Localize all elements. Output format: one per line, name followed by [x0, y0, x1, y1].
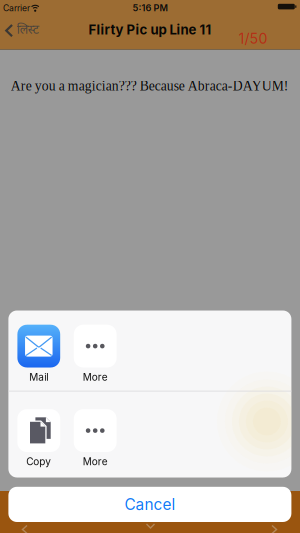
button[interactable]: Copy	[17, 409, 60, 468]
button[interactable]: Back	[5, 22, 39, 39]
staticText: Flirty Pic up Line 11	[88, 22, 211, 38]
staticText: More	[83, 456, 108, 468]
staticText: 5:16 PM	[132, 2, 167, 13]
staticText: लिस्ट	[17, 22, 39, 39]
staticText: Copy	[26, 456, 51, 468]
staticText: Carrier	[3, 3, 30, 13]
staticText: 1/50	[238, 30, 267, 47]
button[interactable]: Mail	[17, 325, 60, 383]
staticText: Are you a magician??? Because Abraca-DAY…	[11, 78, 289, 94]
staticText: More	[83, 371, 108, 383]
staticText: Mail	[29, 371, 48, 383]
button[interactable]: Cancel	[8, 487, 291, 522]
button[interactable]: More	[74, 409, 117, 468]
button[interactable]: More	[74, 325, 117, 383]
staticText: Cancel	[124, 495, 175, 514]
